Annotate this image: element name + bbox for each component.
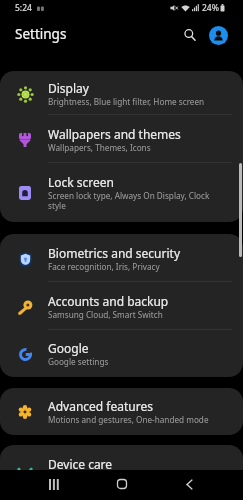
- button[interactable]: Home: [110, 472, 134, 496]
- staticText: Screen lock type, Always On Display, Clo…: [48, 190, 224, 212]
- button[interactable]: Account: [209, 26, 228, 45]
- staticText: Biometrics and security: [48, 245, 181, 261]
- staticText: Brightness, Blue light filter, Home scre…: [48, 96, 205, 107]
- button[interactable]: Recents: [42, 472, 66, 496]
- button[interactable]: Device care: [0, 445, 243, 470]
- button[interactable]: Display: [0, 71, 243, 115]
- staticText: Device care: [48, 456, 113, 470]
- staticText: Advanced features: [48, 398, 153, 414]
- staticText: Samsung Cloud, Smart Switch: [48, 309, 163, 320]
- staticText: Google settings: [48, 356, 109, 367]
- button[interactable]: Wallpapers and themes: [0, 115, 243, 163]
- staticText: Lock screen: [48, 174, 115, 190]
- staticText: Settings: [15, 25, 67, 43]
- button[interactable]: Biometrics and security: [0, 234, 243, 282]
- staticText: Motions and gestures, One-handed mode: [48, 414, 209, 425]
- staticText: Wallpapers, Themes, Icons: [48, 142, 151, 153]
- button[interactable]: Accounts and backup: [0, 282, 243, 330]
- button[interactable]: Advanced features: [0, 388, 243, 435]
- button[interactable]: Lock screen: [0, 163, 243, 222]
- staticText: Wallpapers and themes: [48, 126, 181, 142]
- staticText: 5:24: [15, 2, 32, 14]
- button[interactable]: Back: [177, 472, 201, 496]
- staticText: 24%: [202, 2, 219, 14]
- staticText: Face recognition, Iris, Privacy: [48, 261, 160, 272]
- button[interactable]: Search: [179, 24, 201, 46]
- button[interactable]: Google: [0, 330, 243, 377]
- staticText: Display: [48, 80, 89, 96]
- staticText: Accounts and backup: [48, 293, 169, 309]
- staticText: Google: [48, 340, 89, 356]
